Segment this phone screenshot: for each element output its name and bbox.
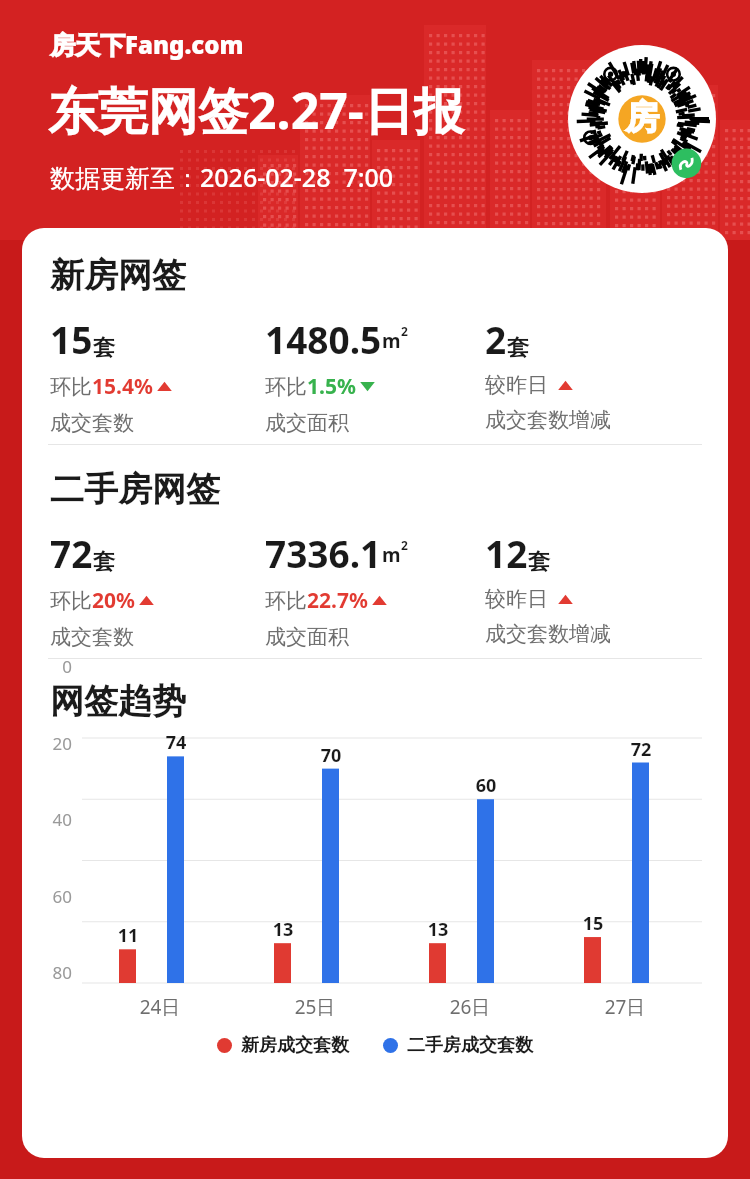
staticText: 40 (36, 808, 72, 831)
button[interactable]: 72 (50, 528, 155, 650)
staticText: 成交套数 (50, 410, 134, 436)
staticText: 套 (93, 334, 115, 362)
button[interactable]: 新房成交套数 (217, 1034, 533, 1057)
staticText: 二手房网签 (50, 468, 220, 511)
staticText: 东莞网签2.27-日报 (48, 76, 464, 144)
staticText: 成交套数 (50, 624, 134, 650)
staticText: 2 (485, 314, 507, 364)
staticText: 7336.1 (265, 528, 382, 578)
staticText: 房 (625, 96, 659, 139)
staticText: 成交套数增减 (485, 407, 611, 433)
staticText: 15.4% (92, 372, 153, 401)
staticText: m (382, 328, 401, 354)
button[interactable]: 7336.1 (265, 528, 408, 650)
staticText: 2 (401, 537, 408, 553)
staticText: 数据更新至：2026-02-28 7:00 (50, 160, 394, 194)
button[interactable]: 房天下 (50, 28, 244, 61)
staticText: 二手房成交套数 (407, 1034, 533, 1057)
staticText: 15 (575, 911, 611, 936)
staticText: 0 (36, 655, 72, 678)
staticText: 套 (93, 548, 115, 576)
button[interactable]: 扫码小程序 (568, 45, 716, 193)
staticText: 房天下 (50, 30, 125, 61)
staticText: 12 (485, 528, 528, 578)
staticText: 较昨日 (485, 586, 548, 612)
staticText: 11 (110, 923, 146, 948)
button[interactable]: 1480.5 (265, 314, 408, 436)
staticText: 60 (36, 885, 72, 908)
staticText: 13 (420, 917, 456, 942)
staticText: 2 (401, 323, 408, 339)
staticText: 70 (313, 743, 349, 768)
staticText: 20 (36, 732, 72, 755)
staticText: 27日 (595, 994, 655, 1020)
staticText: 15 (50, 314, 93, 364)
staticText: 新房成交套数 (241, 1034, 349, 1057)
staticText: 环比 (265, 374, 307, 400)
staticText: 80 (36, 961, 72, 984)
staticText: 环比 (50, 374, 92, 400)
staticText: 成交面积 (265, 624, 349, 650)
staticText: 25日 (285, 994, 345, 1020)
staticText: 13 (265, 917, 301, 942)
staticText: 20% (92, 586, 135, 615)
staticText: 套 (507, 334, 529, 362)
staticText: 环比 (50, 588, 92, 614)
staticText: 网签趋势 (50, 680, 186, 723)
staticText: 72 (623, 737, 659, 762)
staticText: 新房网签 (50, 254, 186, 297)
staticText: 套 (528, 548, 550, 576)
staticText: 1.5% (307, 372, 356, 401)
staticText: 74 (158, 730, 194, 755)
staticText: 72 (50, 528, 93, 578)
staticText: 成交套数增减 (485, 621, 611, 647)
staticText: 成交面积 (265, 410, 349, 436)
staticText: Fang.com (125, 28, 244, 61)
staticText: 22.7% (307, 586, 368, 615)
staticText: m (382, 542, 401, 568)
staticText: 环比 (265, 588, 307, 614)
staticText: 24日 (130, 994, 190, 1020)
staticText: 较昨日 (485, 372, 548, 398)
button[interactable]: 2 (485, 314, 611, 433)
staticText: 1480.5 (265, 314, 382, 364)
staticText: 26日 (440, 994, 500, 1020)
staticText: 60 (468, 773, 504, 798)
button[interactable]: 12 (485, 528, 611, 647)
button[interactable]: 15 (50, 314, 173, 436)
